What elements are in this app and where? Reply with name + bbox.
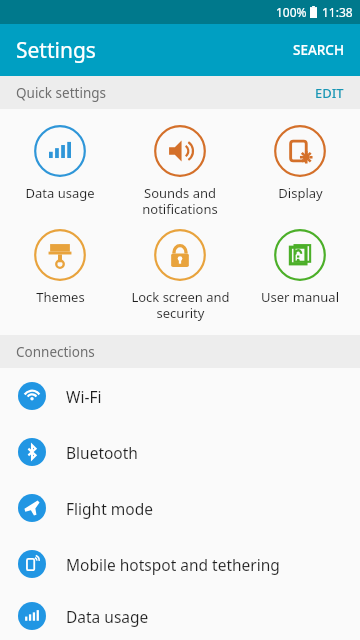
button[interactable]: Themes <box>0 227 120 308</box>
button[interactable]: Display <box>240 123 360 204</box>
staticText: Mobile hotspot and tethering <box>66 554 280 575</box>
button[interactable]: User manual <box>240 227 360 308</box>
button[interactable]: EDIT <box>299 76 360 109</box>
staticText: 11:38 <box>322 4 353 20</box>
staticText: Quick settings <box>16 84 106 102</box>
staticText: Lock screen and security <box>131 288 230 321</box>
button[interactable]: Mobile hotspot and tethering <box>0 536 360 592</box>
button[interactable]: Wi-Fi <box>0 368 360 424</box>
staticText: Bluetooth <box>66 442 138 463</box>
button[interactable]: SEARCH <box>277 31 360 69</box>
staticText: Themes <box>36 288 85 306</box>
staticText: Sounds and notifications <box>142 184 218 217</box>
staticText: SEARCH <box>293 41 344 59</box>
button[interactable]: Sounds and notifications <box>120 123 240 219</box>
button[interactable]: Flight mode <box>0 480 360 536</box>
staticText: Data usage <box>66 606 149 627</box>
button[interactable]: Bluetooth <box>0 424 360 480</box>
staticText: Wi-Fi <box>66 386 102 407</box>
staticText: 100% <box>276 4 307 20</box>
staticText: Data usage <box>25 184 95 202</box>
staticText: Connections <box>16 343 95 361</box>
button[interactable]: Lock screen and security <box>120 227 240 323</box>
staticText: User manual <box>261 288 339 306</box>
button[interactable]: Data usage <box>0 123 120 204</box>
staticText: EDIT <box>315 84 344 102</box>
staticText: Flight mode <box>66 498 153 519</box>
staticText: Settings <box>16 36 96 65</box>
staticText: Display <box>278 184 323 202</box>
button[interactable]: Data usage <box>0 592 360 640</box>
